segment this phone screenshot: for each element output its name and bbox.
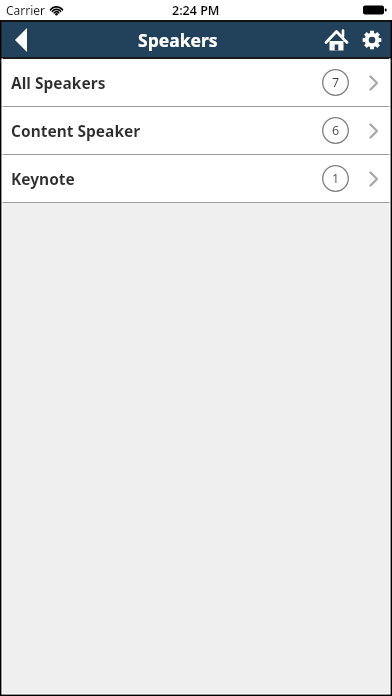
- button[interactable]: [0, 22, 44, 57]
- button[interactable]: All Speakers: [0, 59, 392, 107]
- button[interactable]: Content Speaker: [0, 107, 392, 155]
- staticText: 1: [332, 170, 340, 187]
- staticText: All Speakers: [11, 72, 106, 93]
- button[interactable]: [354, 22, 390, 57]
- staticText: Keynote: [11, 168, 75, 189]
- staticText: Content Speaker: [11, 120, 141, 141]
- staticText: Carrier: [6, 2, 46, 18]
- staticText: Speakers: [138, 28, 218, 52]
- button[interactable]: [318, 22, 354, 57]
- staticText: 7: [332, 74, 340, 91]
- staticText: 2:24 PM: [172, 2, 220, 19]
- staticText: 6: [332, 122, 340, 139]
- button[interactable]: Keynote: [0, 155, 392, 203]
